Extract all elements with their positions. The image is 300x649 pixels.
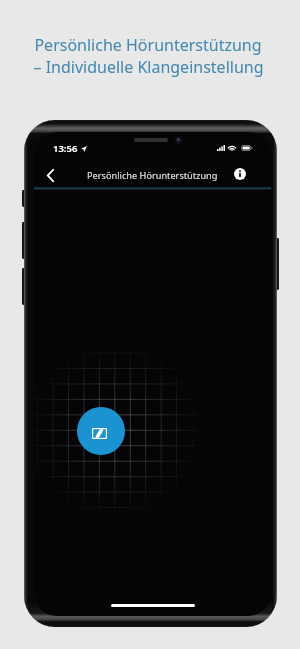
button[interactable]: Sound personalisation control — [77, 407, 125, 455]
staticText: – Individuelle Klangeinstellung — [33, 56, 264, 78]
button[interactable]: Back — [36, 161, 64, 187]
staticText: Persönliche Hörunterstützung — [87, 169, 218, 182]
staticText: Persönliche Hörunterstützung — [34, 34, 262, 56]
staticText: 13:56 — [53, 142, 78, 155]
button[interactable]: Info — [230, 161, 250, 187]
